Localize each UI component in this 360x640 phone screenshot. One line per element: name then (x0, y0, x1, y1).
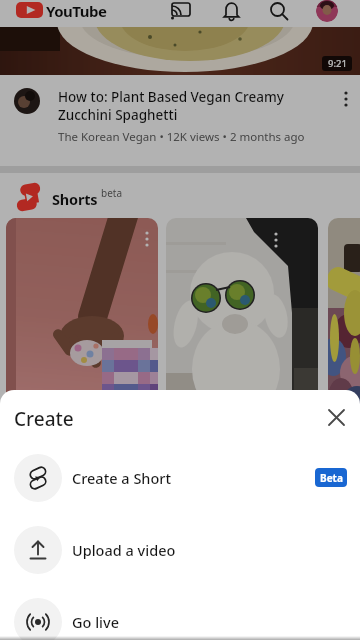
button[interactable] (6, 218, 158, 418)
button[interactable] (270, 2, 289, 21)
button[interactable] (328, 218, 360, 418)
button[interactable]: How to: Plant Based Vegan Creamy (0, 75, 360, 165)
button[interactable]: Upload a video (0, 519, 360, 581)
button[interactable]: 9:21 (0, 27, 360, 75)
button[interactable] (171, 2, 191, 19)
button[interactable] (316, 0, 338, 22)
staticText: beta (101, 186, 123, 200)
staticText: The Korean Vegan • 12K views • 2 months … (58, 129, 305, 145)
staticText: Create a Short (72, 468, 171, 488)
staticText: Upload a video (72, 540, 176, 560)
staticText: Create (14, 406, 74, 432)
button[interactable]: Create a Short (0, 447, 360, 509)
staticText: Shorts (52, 189, 98, 209)
button[interactable] (16, 2, 43, 18)
button[interactable] (166, 218, 318, 418)
staticText: 9:21 (328, 57, 347, 70)
button[interactable] (322, 403, 350, 431)
staticText: How to: Plant Based Vegan Creamy (58, 88, 284, 106)
staticText: YouTube (46, 1, 107, 21)
staticText: Go live (72, 612, 119, 632)
button[interactable] (340, 91, 352, 111)
button[interactable]: Go live (0, 591, 360, 640)
staticText: Beta (320, 471, 343, 485)
staticText: Zucchini Spaghetti (58, 106, 178, 124)
button[interactable] (222, 1, 241, 21)
